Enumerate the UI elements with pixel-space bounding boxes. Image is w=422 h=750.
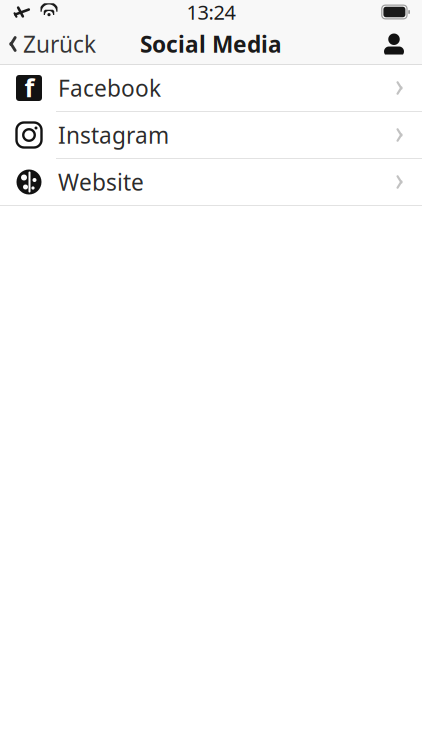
staticText: 13:24 [186, 0, 235, 25]
staticText: f [24, 71, 34, 104]
button[interactable]: Profile [382, 26, 422, 61]
button[interactable]: Zurück [0, 23, 96, 65]
button[interactable]: Instagram [0, 112, 422, 159]
staticText: Zurück [23, 29, 96, 59]
staticText: Social Media [140, 29, 282, 59]
button[interactable]: Website [0, 159, 422, 206]
staticText: Website [58, 167, 144, 197]
staticText: Facebook [58, 73, 161, 103]
button[interactable]: f [0, 65, 422, 112]
staticText: Instagram [58, 120, 169, 150]
